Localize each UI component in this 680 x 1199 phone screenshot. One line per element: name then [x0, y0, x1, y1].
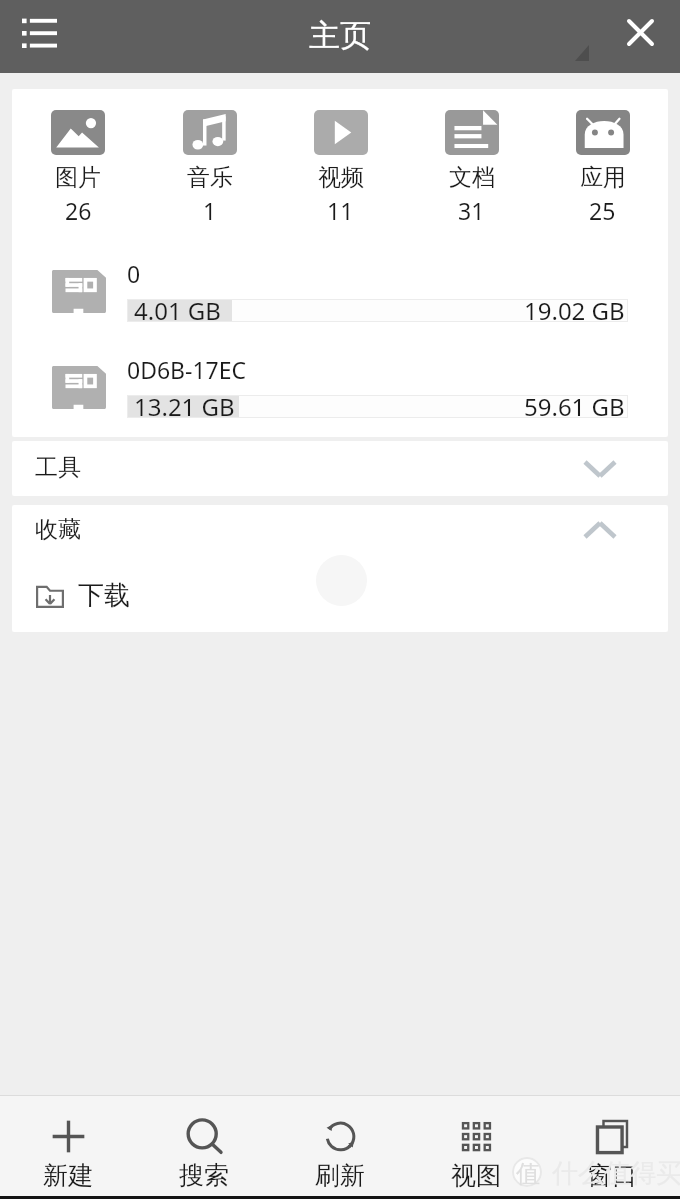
- staticText: 图片: [55, 163, 101, 192]
- button[interactable]: 图片: [12, 89, 144, 437]
- button[interactable]: 窗口: [544, 1095, 680, 1196]
- button[interactable]: 新建: [0, 1095, 136, 1196]
- staticText: 收藏: [35, 515, 81, 544]
- button[interactable]: 0: [12, 261, 668, 333]
- staticText: 文档: [449, 163, 495, 192]
- button[interactable]: 音乐: [144, 89, 275, 437]
- staticText: 应用: [580, 163, 626, 192]
- staticText: 音乐: [187, 163, 233, 192]
- staticText: 26: [65, 195, 92, 226]
- button[interactable]: 0D6B-17EC: [12, 357, 668, 429]
- staticText: 值: [516, 1159, 540, 1189]
- button[interactable]: 视频: [275, 89, 406, 437]
- staticText: 窗口: [587, 1160, 637, 1191]
- button[interactable]: Menu: [4, 6, 76, 67]
- staticText: 13.21 GB: [134, 390, 235, 423]
- staticText: 新建: [43, 1160, 93, 1191]
- staticText: 0: [127, 258, 141, 289]
- button[interactable]: Close: [606, 4, 676, 69]
- button[interactable]: 搜索: [136, 1095, 272, 1196]
- staticText: 0D6B-17EC: [127, 354, 247, 385]
- button[interactable]: 应用: [537, 89, 668, 437]
- button[interactable]: 刷新: [272, 1095, 408, 1196]
- button[interactable]: 视图: [408, 1095, 544, 1196]
- staticText: 视图: [451, 1160, 501, 1191]
- staticText: 主页: [309, 16, 371, 55]
- staticText: 31: [458, 195, 485, 226]
- button[interactable]: 文档: [406, 89, 537, 437]
- button[interactable]: 工具: [12, 441, 668, 496]
- staticText: 搜索: [179, 1160, 229, 1191]
- staticText: 19.02 GB: [524, 294, 625, 327]
- staticText: 4.01 GB: [134, 294, 221, 327]
- staticText: 1: [203, 195, 217, 226]
- button[interactable]: 收藏: [12, 505, 668, 555]
- button[interactable]: 下载: [12, 555, 668, 632]
- staticText: 下载: [78, 579, 130, 612]
- staticText: 什么值得买: [552, 1157, 680, 1190]
- staticText: 工具: [35, 453, 81, 482]
- staticText: 59.61 GB: [524, 390, 625, 423]
- staticText: 25: [589, 195, 616, 226]
- staticText: 11: [327, 195, 354, 226]
- staticText: 视频: [318, 163, 364, 192]
- staticText: 刷新: [315, 1160, 365, 1191]
